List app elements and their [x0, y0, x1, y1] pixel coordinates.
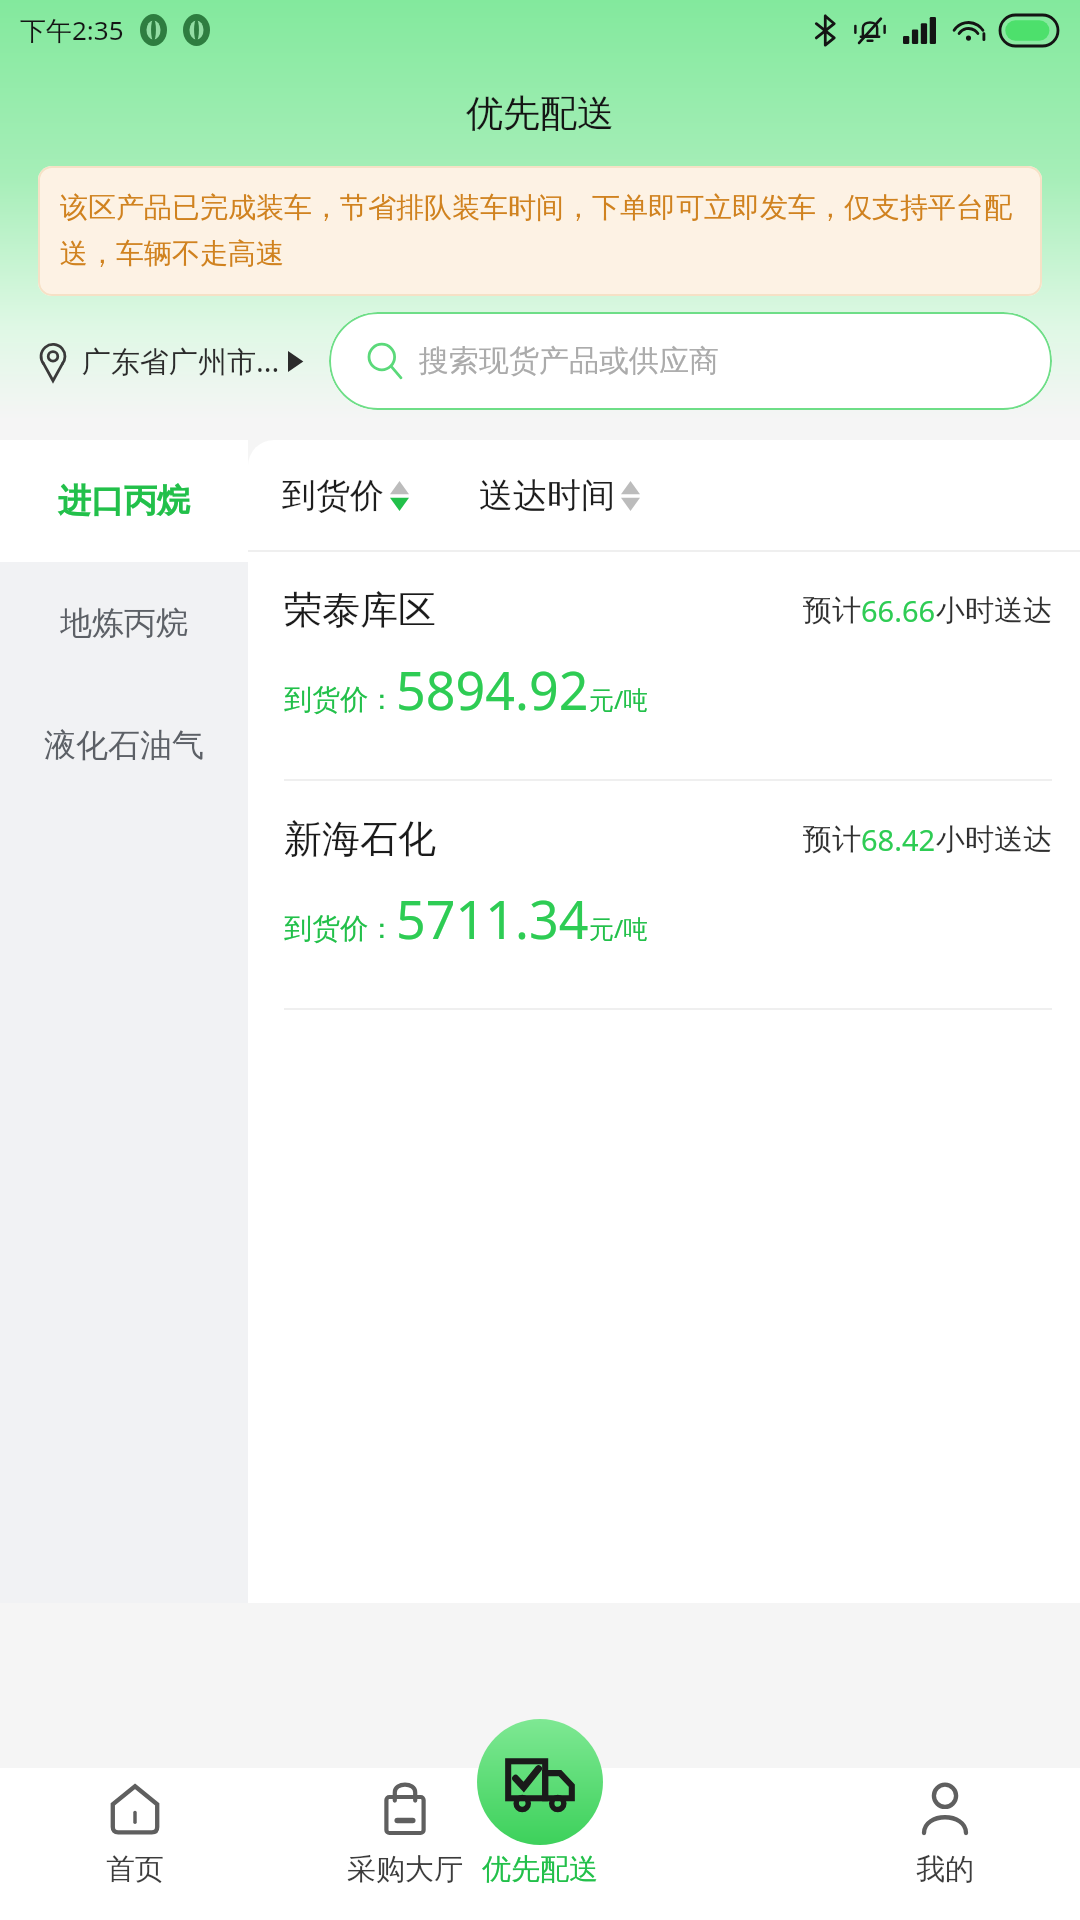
staticText: 新海石化 [284, 815, 436, 863]
staticText: 采购大厅 [347, 1851, 463, 1888]
staticText: 广东省广州市... [82, 341, 280, 381]
button[interactable]: 荣泰库区 [248, 552, 1080, 781]
staticText: 首页 [106, 1851, 164, 1888]
button[interactable]: 进口丙烷 [0, 440, 248, 562]
button[interactable]: 地炼丙烷 [0, 562, 248, 684]
staticText: 5711.34 [396, 883, 589, 954]
staticText: 地炼丙烷 [60, 603, 188, 643]
button[interactable]: 我的 [810, 1768, 1080, 1920]
staticText: 66.66 [861, 591, 936, 630]
staticText: 到货价 [282, 474, 384, 517]
button[interactable]: 采购大厅 [270, 1768, 540, 1920]
button[interactable]: 首页 [0, 1768, 270, 1920]
button[interactable]: 该区产品已完成装车，节省排队装车时间，下单即可立即发车，仅支持平台配送，车辆不走… [38, 166, 1042, 296]
staticText: 小时送达 [936, 592, 1052, 629]
button[interactable]: 搜索现货产品或供应商 [329, 312, 1052, 410]
button[interactable]: 广东省广州市... [30, 328, 305, 394]
button[interactable]: 优先配送 [415, 1719, 665, 1920]
staticText: 到货价： [284, 911, 396, 946]
staticText: 元/吨 [589, 911, 649, 945]
button[interactable]: 到货价 [282, 462, 409, 529]
staticText: 预计 [803, 821, 861, 858]
button[interactable]: 新海石化 [248, 781, 1080, 1010]
staticText: 进口丙烷 [58, 480, 190, 522]
staticText: 搜索现货产品或供应商 [419, 342, 719, 380]
staticText: 下午2:35 [20, 12, 124, 48]
staticText: 优先配送 [466, 90, 614, 137]
staticText: 优先配送 [482, 1851, 598, 1888]
staticText: 该区产品已完成装车，节省排队装车时间，下单即可立即发车，仅支持平台配送，车辆不走… [60, 190, 1020, 272]
staticText: 小时送达 [936, 821, 1052, 858]
staticText: 元/吨 [589, 682, 649, 716]
staticText: 到货价： [284, 682, 396, 717]
staticText: 荣泰库区 [284, 586, 436, 634]
staticText: 5894.92 [396, 654, 589, 725]
staticText: 液化石油气 [44, 725, 204, 765]
button[interactable]: 送达时间 [479, 462, 640, 529]
staticText: 68.42 [861, 820, 936, 859]
button[interactable]: 液化石油气 [0, 684, 248, 806]
staticText: 我的 [916, 1851, 974, 1888]
staticText: 预计 [803, 592, 861, 629]
staticText: 送达时间 [479, 474, 615, 517]
